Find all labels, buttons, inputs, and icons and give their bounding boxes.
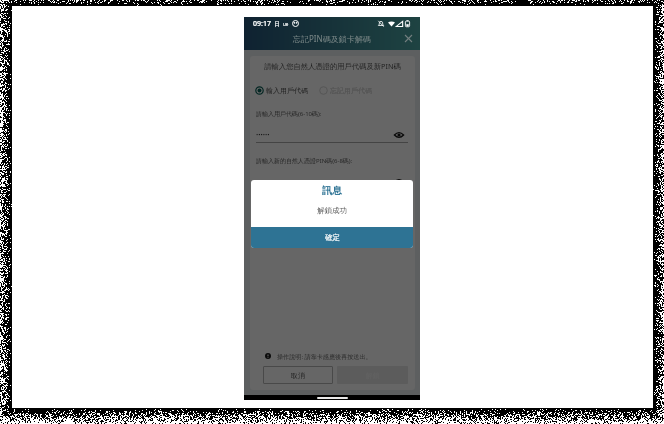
staticText: 確定 — [325, 233, 340, 242]
button[interactable]: Show password — [393, 176, 404, 187]
staticText: 請輸入新的自然人憑證PIN碼(6-8碼): — [256, 157, 353, 165]
staticText: 取消 — [291, 371, 305, 380]
staticText: •••••• — [256, 131, 270, 139]
staticText: ue — [283, 21, 289, 27]
staticText: 忘記用戶代碼 — [330, 86, 372, 95]
staticText: 日 — [274, 20, 280, 28]
button[interactable]: Close — [401, 31, 415, 45]
staticText: 忘記PIN碼及鎖卡解碼 — [293, 33, 371, 44]
button[interactable]: Show password — [393, 129, 404, 140]
staticText: 09:17 — [253, 19, 271, 29]
staticText: 操作說明: 請靠卡感應後再按送出。 — [277, 352, 372, 360]
button[interactable]: 忘記用戶代碼 — [319, 86, 372, 95]
button[interactable]: 取消 — [263, 366, 333, 384]
staticText: 請輸入用戶代碼(6-10碼): — [256, 110, 322, 118]
staticText: •••••• — [256, 178, 270, 186]
button[interactable]: 確定 — [251, 227, 413, 248]
staticText: 訊息 — [322, 184, 342, 197]
staticText: 解鎖成功 — [317, 206, 347, 215]
button[interactable]: 輸入用戶代碼 — [255, 86, 308, 95]
staticText: 請輸入您自然人憑證的用戶代碼及新PIN碼 — [250, 61, 415, 71]
staticText: 輸入用戶代碼 — [266, 86, 308, 95]
